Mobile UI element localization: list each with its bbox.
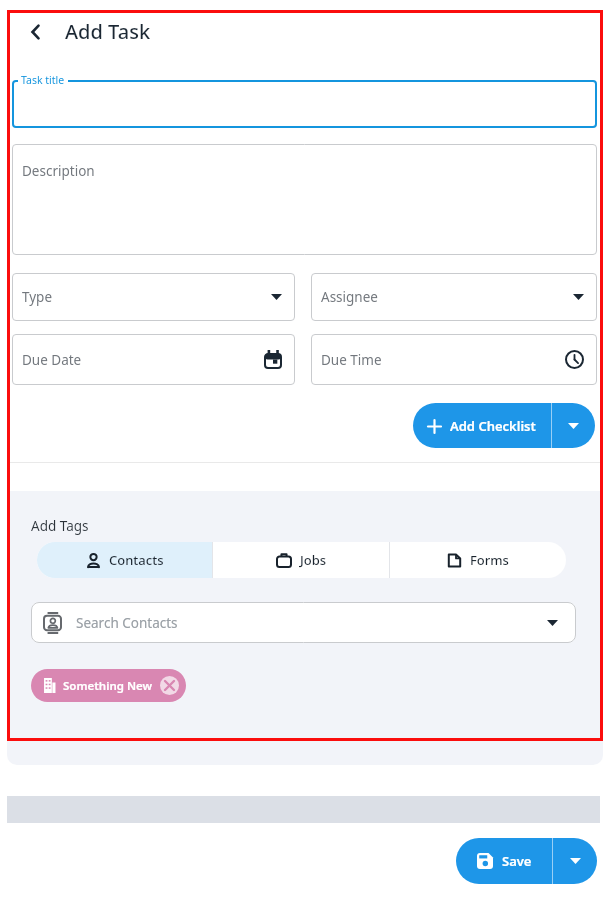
button[interactable]: Due Date bbox=[12, 334, 295, 385]
staticText: Search Contacts bbox=[76, 614, 547, 632]
button[interactable]: Jobs bbox=[213, 542, 389, 578]
button[interactable]: Contacts bbox=[37, 542, 212, 578]
button[interactable]: Assignee bbox=[311, 273, 597, 321]
staticText: Add Task bbox=[65, 18, 151, 45]
button[interactable]: Search Contacts bbox=[31, 602, 576, 643]
staticText: Type bbox=[22, 288, 271, 306]
button[interactable]: Description bbox=[12, 144, 597, 255]
staticText: Assignee bbox=[321, 288, 573, 306]
staticText: Task title bbox=[21, 73, 65, 87]
staticText: Add Tags bbox=[31, 517, 89, 535]
staticText: Add Checklist bbox=[450, 417, 536, 435]
staticText: Jobs bbox=[300, 551, 327, 569]
button[interactable]: Type bbox=[12, 273, 295, 321]
staticText: Something New bbox=[63, 678, 153, 694]
staticText: Save bbox=[502, 852, 532, 870]
button[interactable]: Save bbox=[456, 838, 597, 884]
staticText: Due Date bbox=[22, 351, 264, 369]
button[interactable]: Something New bbox=[31, 669, 186, 702]
button[interactable]: Add Checklist bbox=[413, 403, 595, 448]
staticText: Forms bbox=[470, 551, 509, 569]
staticText: Description bbox=[22, 162, 95, 180]
staticText: Contacts bbox=[109, 551, 164, 569]
staticText: Due Time bbox=[321, 351, 565, 369]
button[interactable] bbox=[20, 16, 52, 48]
button[interactable]: Due Time bbox=[311, 334, 597, 385]
button[interactable] bbox=[12, 80, 597, 128]
button[interactable]: Forms bbox=[390, 542, 566, 578]
